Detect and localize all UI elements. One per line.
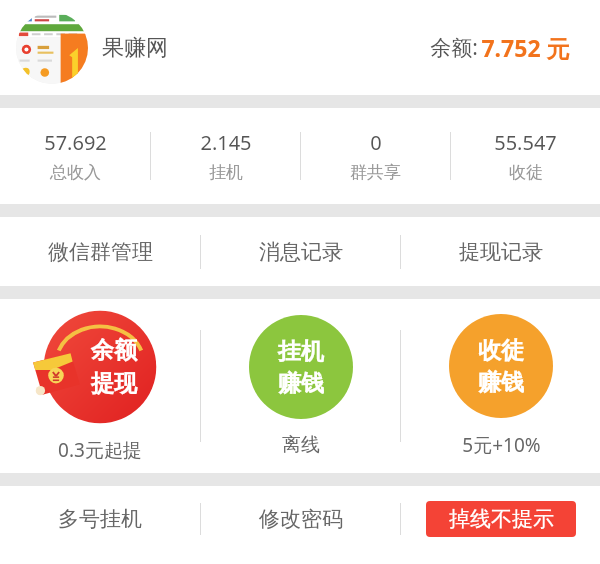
- staticText: 7.752 元: [481, 32, 570, 63]
- button[interactable]: 掉线不提示: [426, 501, 576, 537]
- staticText: 果赚网: [102, 34, 168, 62]
- staticText: 5元+10%: [462, 432, 541, 458]
- button[interactable]: 57.692: [0, 108, 150, 204]
- button[interactable]: 消息记录: [201, 217, 400, 286]
- staticText: 提现: [91, 369, 137, 398]
- staticText: 赚钱: [278, 369, 324, 398]
- staticText: 总收入: [50, 162, 101, 183]
- staticText: 赚钱: [478, 368, 524, 397]
- button[interactable]: 多号挂机: [0, 486, 200, 551]
- staticText: 挂机: [278, 337, 324, 366]
- staticText: 0: [370, 129, 382, 156]
- button[interactable]: Profile avatar: [16, 12, 88, 84]
- button[interactable]: 0: [301, 108, 450, 204]
- staticText: 55.547: [494, 129, 557, 156]
- button[interactable]: 挂机: [201, 299, 400, 473]
- button[interactable]: 余额: [0, 299, 200, 473]
- staticText: 收徒: [509, 162, 543, 183]
- staticText: 掉线不提示: [449, 506, 554, 532]
- staticText: 提现记录: [459, 239, 543, 265]
- staticText: 群共享: [350, 162, 401, 183]
- button[interactable]: 55.547: [451, 108, 600, 204]
- button[interactable]: 修改密码: [201, 486, 400, 551]
- staticText: 消息记录: [259, 239, 343, 265]
- button[interactable]: 收徒: [401, 299, 600, 473]
- staticText: 余额:: [427, 33, 481, 62]
- button[interactable]: 2.145: [151, 108, 300, 204]
- staticText: 57.692: [44, 129, 107, 156]
- staticText: 收徒: [478, 336, 524, 365]
- staticText: 离线: [282, 433, 320, 457]
- staticText: 多号挂机: [58, 506, 142, 532]
- staticText: 2.145: [200, 129, 252, 156]
- button[interactable]: 微信群管理: [0, 217, 200, 286]
- button[interactable]: 提现记录: [401, 217, 600, 286]
- staticText: 修改密码: [259, 506, 343, 532]
- staticText: 0.3元起提: [58, 437, 142, 463]
- staticText: 微信群管理: [48, 239, 153, 265]
- button[interactable]: 余额:: [423, 32, 574, 63]
- staticText: 余额: [91, 336, 137, 365]
- staticText: 挂机: [209, 162, 243, 183]
